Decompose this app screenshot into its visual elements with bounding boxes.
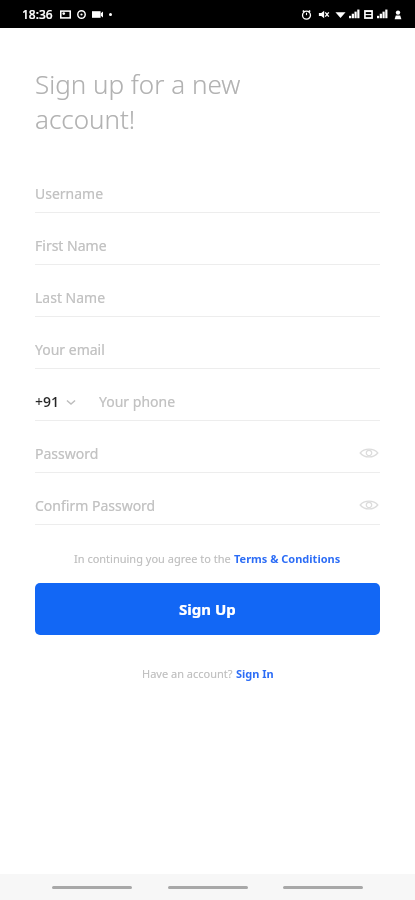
staticText: Have an account? [142,666,236,681]
button[interactable]: Your email [0,330,415,382]
staticText: Sign In [236,666,274,681]
staticText: account! [35,101,136,136]
button[interactable]: Username [0,174,415,226]
staticText: Your email [35,340,105,359]
button[interactable]: Navigation [283,881,363,893]
button[interactable]: In continuing you agree to the [0,548,415,569]
button[interactable]: Sign Up [35,583,380,635]
button[interactable]: Show password [356,440,382,466]
staticText: Terms & Conditions [234,551,341,566]
button[interactable]: Navigation [168,881,248,893]
staticText: 18:36 [22,6,53,22]
staticText: First Name [35,236,107,255]
staticText: Password [35,444,99,463]
button[interactable]: Password [0,434,415,486]
staticText: Username [35,184,104,203]
button[interactable]: Show password [356,492,382,518]
staticText: +91 [35,392,60,411]
staticText: Sign up for a new [35,66,241,101]
staticText: Confirm Password [35,496,156,515]
staticText: In continuing you agree to the [74,551,234,566]
button[interactable]: Have an account? [0,663,415,684]
button[interactable]: First Name [0,226,415,278]
button[interactable]: Confirm Password [0,486,415,538]
staticText: Sign Up [179,599,236,619]
button[interactable]: Select country code [35,392,77,411]
button[interactable]: Select country code [0,382,415,434]
staticText: Last Name [35,288,106,307]
staticText: Your phone [99,392,176,411]
button[interactable]: Last Name [0,278,415,330]
button[interactable]: Navigation [52,881,132,893]
